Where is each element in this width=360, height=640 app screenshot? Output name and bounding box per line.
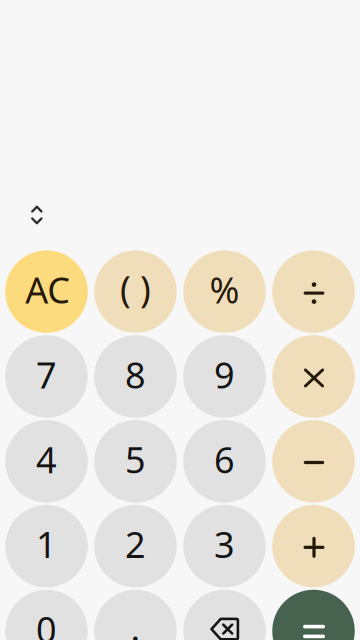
button[interactable]: 4 bbox=[5, 420, 88, 503]
button[interactable]: 9 bbox=[183, 335, 266, 418]
button[interactable]: Plus bbox=[272, 505, 355, 587]
button[interactable]: 3 bbox=[183, 505, 266, 587]
button[interactable]: 1 bbox=[5, 505, 88, 587]
staticText: 1 bbox=[36, 520, 57, 568]
staticText: 8 bbox=[125, 350, 146, 398]
staticText: 4 bbox=[36, 435, 57, 483]
button[interactable]: 6 bbox=[183, 420, 266, 503]
staticText: 2 bbox=[125, 520, 146, 568]
button[interactable]: 0 bbox=[5, 590, 88, 640]
staticText: 7 bbox=[36, 350, 57, 398]
button[interactable]: Multiply bbox=[272, 335, 355, 418]
button[interactable]: Equals bbox=[272, 590, 355, 640]
staticText: AC bbox=[25, 266, 70, 313]
button[interactable]: 8 bbox=[94, 335, 177, 418]
button[interactable]: Minus bbox=[272, 420, 355, 503]
button[interactable]: AC bbox=[5, 250, 88, 333]
button[interactable]: 5 bbox=[94, 420, 177, 503]
staticText: 6 bbox=[214, 435, 235, 483]
button[interactable]: . bbox=[94, 590, 177, 640]
staticText: 3 bbox=[214, 520, 235, 568]
button[interactable]: 7 bbox=[5, 335, 88, 418]
staticText: % bbox=[209, 266, 239, 313]
button[interactable]: Divide bbox=[272, 250, 355, 333]
button[interactable]: Expand history bbox=[21, 196, 53, 234]
button[interactable]: Delete bbox=[183, 590, 266, 640]
staticText: 9 bbox=[214, 350, 235, 398]
button[interactable]: % bbox=[183, 250, 266, 333]
button[interactable]: 2 bbox=[94, 505, 177, 587]
staticText: 5 bbox=[125, 435, 146, 483]
staticText: . bbox=[130, 604, 140, 640]
staticText: 0 bbox=[36, 605, 57, 640]
staticText: ( ) bbox=[120, 264, 151, 312]
button[interactable]: ( ) bbox=[94, 250, 177, 333]
